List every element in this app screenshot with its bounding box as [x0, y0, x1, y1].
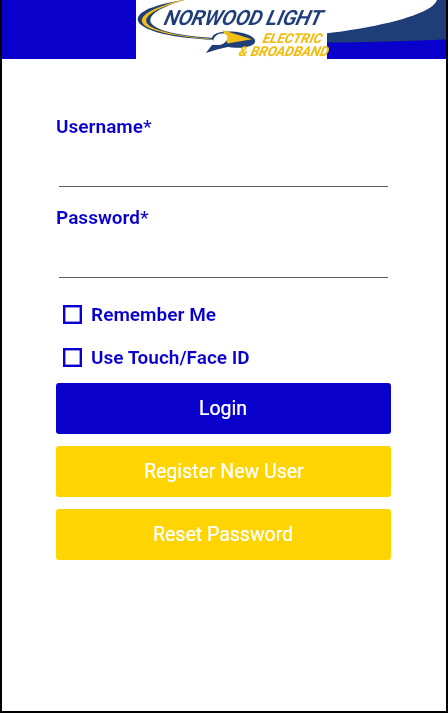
staticText: Reset Password	[153, 523, 294, 546]
button[interactable]: Reset Password	[56, 509, 391, 560]
button[interactable]: Login	[56, 383, 391, 434]
staticText: NORWOOD LIGHT	[163, 6, 321, 31]
staticText: Remember Me	[91, 303, 217, 325]
button[interactable]: Use Touch/Face ID	[63, 346, 250, 368]
staticText: Use Touch/Face ID	[91, 346, 250, 368]
button[interactable]: Register New User	[56, 446, 391, 497]
button[interactable]: Remember Me	[63, 303, 217, 325]
staticText: & BROADBAND	[238, 43, 328, 59]
staticText: Username*	[56, 115, 152, 137]
staticText: Register New User	[144, 460, 304, 483]
staticText: ELECTRIC	[262, 30, 322, 46]
staticText: Password*	[56, 206, 149, 228]
staticText: Login	[199, 397, 248, 420]
